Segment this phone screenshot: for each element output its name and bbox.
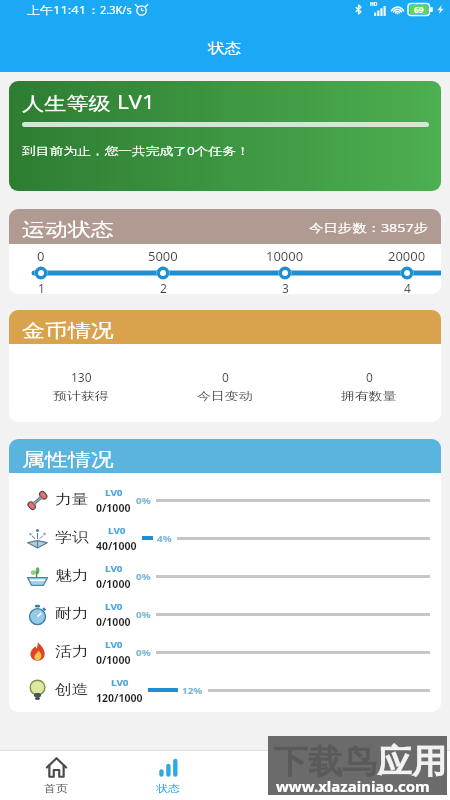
staticText: 0 [222,369,229,385]
staticText: 今日步数：3857步 [309,220,429,236]
staticText: 0% [136,646,151,658]
staticText: 应用 [377,741,446,783]
button[interactable]: 运动状态 [22,209,429,244]
button[interactable]: 学识 [27,519,430,557]
staticText: www.xlazainiao.com [276,776,430,796]
button[interactable]: 0 [153,364,297,403]
staticText: 0 [366,369,373,385]
staticText: 20000 [388,247,426,265]
staticText: 2 [160,280,167,294]
button[interactable]: 130 [9,364,153,403]
button[interactable]: 人生等级 [9,81,441,191]
staticText: 属性情况 [22,448,114,471]
staticText: 到目前为止，您一共完成了0个任务！ [22,143,251,158]
staticText: 0/1000 [96,653,131,667]
button[interactable]: 属性情况 [22,439,441,473]
button[interactable]: 金币情况 [22,310,441,344]
staticText: 魅力 [55,567,89,585]
staticText: 2.3K/s [100,2,132,17]
staticText: 0% [136,608,151,620]
staticText: 人生等级 [22,92,111,115]
staticText: 上午11:41 [27,2,87,17]
button[interactable]: 魅力 [27,557,430,595]
button[interactable]: 状态 [112,751,224,800]
staticText: 预计获得 [53,389,110,403]
staticText: 学识 [55,529,89,547]
button[interactable]: 首页 [0,751,112,800]
staticText: 0/1000 [96,501,131,515]
staticText: 创造 [55,681,89,699]
staticText: 4% [157,532,172,544]
staticText: 金币情况 [22,319,114,342]
staticText: 我的 [382,782,406,795]
other: 状态 [158,757,179,778]
staticText: HD [370,1,378,8]
staticText: 0 [37,247,45,265]
staticText: 今日变动 [197,389,254,403]
staticText: 活力 [55,643,89,661]
button[interactable]: 耐力 [27,595,430,633]
staticText: LV0 [108,524,126,537]
staticText: 任务 [269,782,293,795]
button[interactable]: 任务 [224,751,337,800]
staticText: LV0 [105,638,123,651]
staticText: 0% [136,570,151,582]
staticText: ： [87,3,100,17]
button[interactable]: 我的 [337,751,450,800]
staticText: LV1 [117,88,155,115]
staticText: 下载鸟 [273,741,377,783]
staticText: 耐力 [55,605,89,623]
staticText: 120/1000 [96,691,143,705]
staticText: 1 [38,280,45,294]
button[interactable]: 0 [297,364,441,403]
staticText: 0/1000 [96,615,131,629]
staticText: LV0 [105,562,123,575]
staticText: 力量 [55,491,89,509]
staticText: 69 [414,4,424,16]
staticText: LV0 [105,486,123,499]
staticText: 0% [136,494,151,506]
staticText: LV0 [105,600,123,613]
other: 我的 [383,757,404,778]
staticText: 130 [71,369,92,385]
other: 首页 [46,757,67,778]
button[interactable]: 活力 [27,633,430,671]
staticText: 5000 [148,247,178,265]
staticText: 40/1000 [96,539,137,553]
staticText: 运动状态 [22,218,114,241]
staticText: 12% [182,684,203,696]
staticText: 首页 [44,782,68,795]
staticText: 4 [404,280,411,294]
button[interactable]: 创造 [27,671,430,709]
staticText: 3 [282,280,289,294]
staticText: 10000 [266,247,304,265]
staticText: 拥有数量 [341,389,398,403]
other: 任务 [270,757,291,778]
button[interactable]: 力量 [27,481,430,519]
staticText: 0/1000 [96,577,131,591]
staticText: 状态 [208,40,242,58]
staticText: LV0 [111,676,129,689]
staticText: 状态 [156,782,180,795]
